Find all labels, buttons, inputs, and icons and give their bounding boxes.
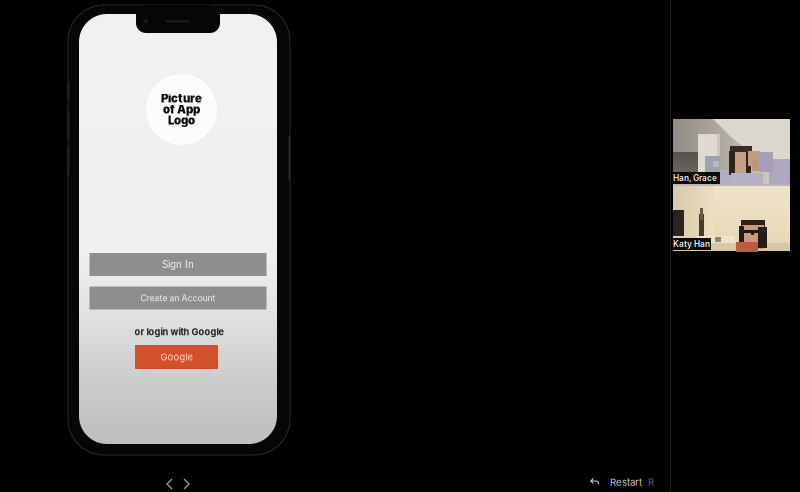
staticText: Sign In <box>162 259 194 270</box>
staticText: of App <box>163 102 200 116</box>
staticText: Picture <box>161 92 202 105</box>
button[interactable]: Google <box>135 345 218 369</box>
button[interactable]: Create an Account <box>89 286 266 309</box>
staticText: Logo <box>168 113 195 127</box>
staticText: Katy Han <box>673 239 710 249</box>
button[interactable]: Restart <box>590 476 654 488</box>
button[interactable]: Previous slide <box>162 474 176 492</box>
staticText: Han, Grace <box>673 173 717 183</box>
staticText: Restart <box>610 476 642 488</box>
staticText: R <box>648 477 654 488</box>
staticText: Create an Account <box>140 293 215 303</box>
staticText: Google <box>160 351 192 363</box>
button[interactable]: Sign In <box>89 253 266 276</box>
button[interactable]: Next slide <box>179 474 193 492</box>
staticText: or login with Google <box>134 326 223 337</box>
